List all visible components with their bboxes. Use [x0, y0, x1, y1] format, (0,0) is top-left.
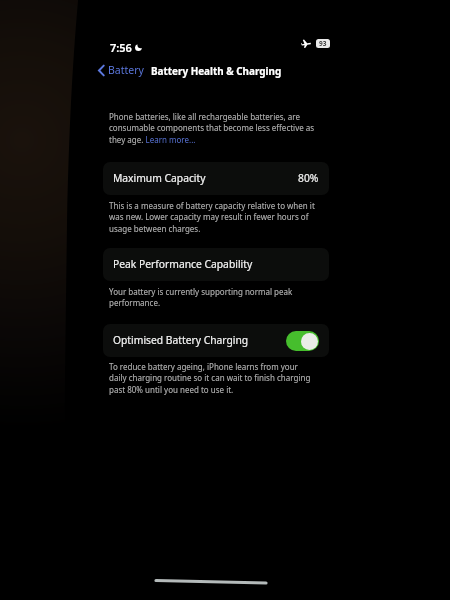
staticText: 7:56 — [110, 40, 132, 55]
staticText: Battery Health & Charging — [151, 64, 282, 77]
button[interactable]: Optimised Battery Charging — [103, 324, 329, 357]
staticText: Maximum Capacity — [113, 171, 206, 185]
other: Aeroplane mode — [301, 39, 311, 48]
button[interactable]: Back to Battery — [97, 60, 142, 80]
staticText: Battery — [108, 63, 144, 77]
staticText: Your battery is currently supporting nor… — [109, 286, 316, 309]
staticText: Peak Performance Capability — [113, 257, 253, 271]
other: Battery 93 percent — [316, 39, 330, 48]
staticText: To reduce battery ageing, iPhone learns … — [109, 361, 316, 396]
staticText: 80% — [298, 171, 319, 185]
staticText: 93 — [319, 39, 327, 48]
button[interactable]: Phone batteries, like all rechargeable b… — [109, 111, 316, 146]
button[interactable]: Maximum Capacity — [103, 162, 329, 195]
staticText: This is a measure of battery capacity re… — [109, 200, 316, 235]
button[interactable]: Peak Performance Capability — [103, 248, 329, 281]
button[interactable]: Optimised Battery Charging toggle — [286, 331, 319, 351]
staticText: Optimised Battery Charging — [113, 333, 249, 347]
